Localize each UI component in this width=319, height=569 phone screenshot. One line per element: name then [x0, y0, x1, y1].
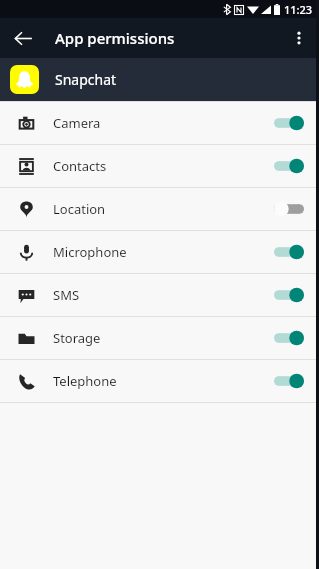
- button[interactable]: More options: [284, 23, 314, 53]
- staticText: Microphone: [53, 243, 271, 261]
- staticText: Snapchat: [55, 70, 117, 89]
- staticText: Camera: [53, 114, 271, 132]
- staticText: App permissions: [55, 28, 175, 48]
- button[interactable]: Location: [0, 188, 319, 230]
- staticText: Contacts: [53, 157, 271, 175]
- button[interactable]: Telephone: [0, 360, 319, 402]
- button[interactable]: Snapchat: [0, 58, 319, 101]
- button[interactable]: Microphone: [0, 231, 319, 273]
- staticText: Telephone: [53, 372, 271, 390]
- button[interactable]: SMS: [0, 274, 319, 316]
- button[interactable]: Back: [6, 21, 40, 55]
- staticText: SMS: [53, 286, 271, 304]
- button[interactable]: Storage: [0, 317, 319, 359]
- staticText: Location: [53, 200, 271, 218]
- button[interactable]: Camera: [0, 102, 319, 144]
- button[interactable]: Contacts: [0, 145, 319, 187]
- staticText: 11:23: [284, 2, 313, 17]
- staticText: Storage: [53, 329, 271, 347]
